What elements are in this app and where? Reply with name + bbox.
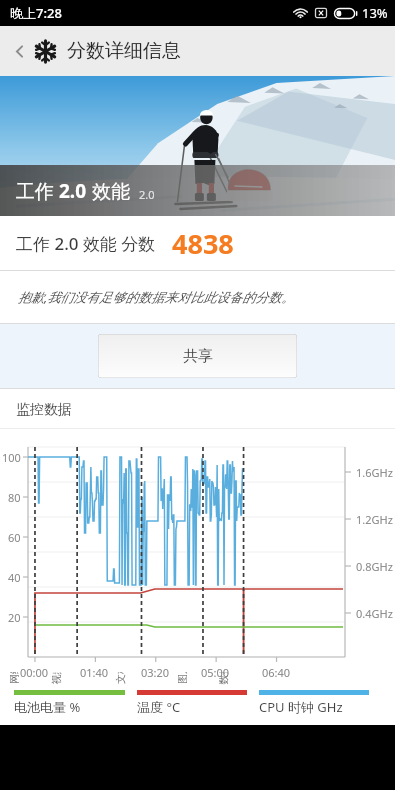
staticText: 网络浏览 2.0 (7, 672, 21, 684)
staticText: 1.2GHz (356, 512, 393, 527)
staticText: 06:40 (262, 665, 291, 680)
staticText: 数据操作 (216, 672, 229, 684)
staticText: 40 (8, 570, 21, 585)
staticText: 0.8GHz (356, 559, 393, 574)
staticText: 2.0 (139, 187, 155, 202)
staticText: 80 (8, 490, 21, 505)
staticText: 抱歉,我们没有足够的数据来对比此设备的分数。 (18, 288, 295, 306)
staticText: 效能 (87, 178, 130, 204)
staticText: 20 (8, 610, 21, 625)
staticText: 图片编辑 2.0 (175, 672, 189, 684)
staticText: 100 (2, 450, 21, 465)
staticText: 分数详细信息 (67, 39, 181, 63)
staticText: 13% (362, 4, 388, 22)
staticText: 温度 °C (137, 698, 181, 716)
staticText: 文档编写 2.0 (113, 672, 127, 684)
staticText: 2.0 (59, 178, 87, 204)
staticText: 0.4GHz (356, 606, 393, 621)
staticText: 工作 2.0 效能 分数 (16, 232, 156, 255)
button[interactable]: Back (4, 36, 34, 66)
staticText: 01:40 (80, 665, 109, 680)
staticText: 视频编辑 (49, 672, 62, 684)
staticText: 电池电量 % (14, 698, 81, 716)
staticText: 03:20 (141, 665, 170, 680)
staticText: 60 (8, 530, 21, 545)
staticText: 共享 (183, 347, 213, 366)
staticText: 4838 (172, 225, 234, 262)
staticText: 05:00 (201, 665, 230, 680)
button[interactable]: 共享 (98, 334, 297, 378)
staticText: 00:00 (20, 665, 49, 680)
staticText: 监控数据 (16, 401, 72, 419)
staticText: 1.6GHz (356, 465, 393, 480)
staticText: CPU 时钟 GHz (259, 698, 343, 716)
staticText: 工作 (16, 178, 59, 204)
staticText: 晚上7:28 (10, 4, 62, 22)
